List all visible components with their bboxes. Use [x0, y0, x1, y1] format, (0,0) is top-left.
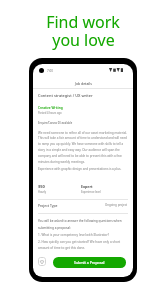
staticText: Posted 4 hours ago	[38, 111, 62, 115]
staticText: Project Type	[38, 203, 58, 207]
staticText: Experience level	[81, 190, 101, 194]
staticText: Creative Writing	[38, 106, 63, 110]
staticText: you love	[52, 29, 115, 51]
staticText: Content strategist / UX writer	[38, 93, 93, 98]
staticText: 1. What is your competency level with Il…	[38, 233, 128, 250]
staticText: Job details	[75, 81, 92, 86]
staticText: Enquire/Canvas 00 available	[38, 121, 73, 125]
staticText: We need someone to refine all of our ass…	[38, 131, 128, 164]
button[interactable]: Submit a Proposal	[53, 257, 126, 268]
staticText: 7:00	[47, 69, 53, 73]
staticText: Expert	[81, 184, 93, 189]
staticText: Ongoing project	[105, 203, 128, 207]
staticText: Submit a Proposal	[74, 260, 105, 265]
staticText: Find work	[46, 11, 120, 29]
staticText: Hourly	[38, 190, 47, 194]
staticText: You will be asked to answer the followin…	[38, 219, 128, 230]
staticText: $50	[38, 184, 45, 189]
staticText: Experience with graphic design and prese…	[38, 167, 122, 171]
button[interactable]: Save job	[38, 257, 46, 266]
